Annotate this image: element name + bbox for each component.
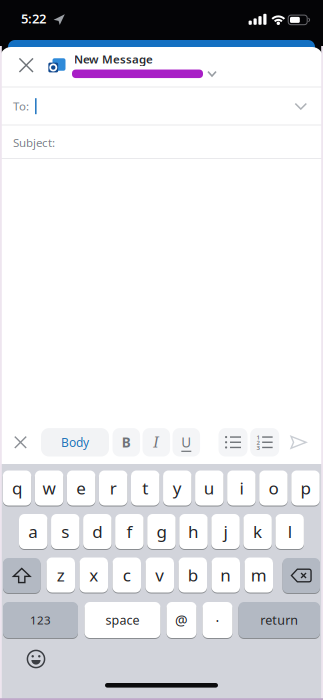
staticText: n [220,564,231,586]
button[interactable]: h [179,513,208,549]
button[interactable]: Underline [173,428,200,457]
button[interactable]: r [99,470,127,506]
staticText: p [300,477,310,499]
button[interactable]: a [19,513,47,549]
staticText: return [260,612,298,628]
button[interactable]: Select account [72,69,216,78]
button[interactable]: Bold [112,428,140,457]
staticText: @ [175,611,188,629]
button[interactable]: 123 [3,601,78,638]
button[interactable]: Expand recipients [286,91,316,121]
button[interactable]: @ [166,601,196,638]
staticText: h [188,520,199,543]
button[interactable]: u [195,470,224,506]
button[interactable]: l [275,513,304,549]
button[interactable]: i [227,470,256,506]
staticText: I [153,434,159,451]
staticText: m [251,564,267,586]
button[interactable]: Close [11,50,41,80]
button[interactable]: y [163,470,192,506]
button[interactable]: c [112,557,141,593]
button[interactable]: Send [283,427,313,457]
button[interactable]: p [291,470,320,506]
staticText: q [12,477,22,499]
button[interactable]: b [178,557,207,593]
staticText: space [105,612,139,628]
button[interactable]: s [51,513,79,549]
staticText: o [268,477,278,499]
button[interactable]: v [145,557,174,593]
staticText: w [43,477,56,499]
staticText: v [155,564,164,586]
staticText: u [204,477,215,499]
staticText: Subject: [13,135,55,150]
button[interactable]: Shift [3,557,40,593]
button[interactable]: Delete [282,557,320,593]
staticText: s [61,520,69,543]
staticText: B [122,433,131,451]
staticText: 3 [256,444,259,452]
button[interactable]: z [46,557,75,593]
staticText: . [215,607,219,626]
staticText: a [28,520,38,543]
button[interactable]: Bulleted list [218,428,247,457]
button[interactable]: n [211,557,240,593]
button[interactable]: Hide formatting [7,429,33,455]
staticText: y [173,477,182,499]
button[interactable]: k [243,513,272,549]
staticText: U [181,433,191,451]
staticText: 123 [30,612,51,628]
staticText: To: [13,98,29,114]
staticText: d [92,520,102,543]
button[interactable]: . [202,601,232,638]
button[interactable]: m [244,557,273,593]
button[interactable]: Body [41,428,109,457]
button[interactable]: Numbered list [250,428,279,457]
staticText: x [89,564,98,586]
staticText: j [223,520,227,543]
button[interactable]: d [83,513,112,549]
button[interactable]: w [35,470,63,506]
staticText: c [123,564,131,586]
button[interactable]: o [259,470,288,506]
button[interactable]: j [211,513,240,549]
staticText: f [126,520,132,543]
staticText: New Message [74,51,153,67]
staticText: 2 [256,438,259,446]
button[interactable]: f [115,513,144,549]
button[interactable]: return [238,601,320,638]
button[interactable]: e [67,470,95,506]
staticText: b [188,564,198,586]
staticText: z [57,564,65,586]
staticText: t [142,477,148,499]
button[interactable]: Emoji [21,644,51,674]
staticText: i [239,477,243,499]
button[interactable]: space [84,601,160,638]
staticText: k [253,520,262,543]
button[interactable]: t [131,470,159,506]
button[interactable]: g [147,513,176,549]
button[interactable]: q [3,470,31,506]
staticText: l [288,520,292,543]
staticText: g [156,520,166,543]
staticText: e [76,477,86,499]
staticText: r [110,477,117,499]
staticText: Body [61,434,89,450]
button[interactable]: Italic [143,428,170,457]
staticText: 5:22 [21,10,46,27]
staticText: 1 [256,433,259,441]
button[interactable]: x [79,557,108,593]
